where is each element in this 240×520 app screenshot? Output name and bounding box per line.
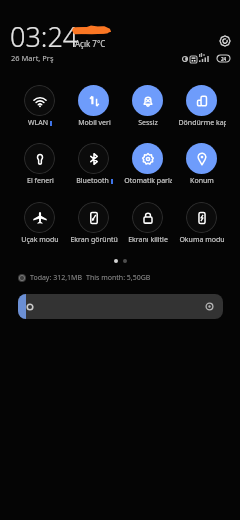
staticText: Ekranı kilitle bbox=[128, 235, 168, 245]
staticText: Today: 312,1MB bbox=[30, 273, 82, 283]
button[interactable] bbox=[67, 80, 121, 126]
button[interactable] bbox=[13, 139, 67, 185]
staticText: El feneri bbox=[27, 176, 54, 186]
staticText: 03:24 bbox=[10, 18, 79, 55]
staticText: Sessiz bbox=[138, 118, 158, 128]
staticText: Döndürme kapalı bbox=[178, 118, 226, 128]
staticText: Okuma modu bbox=[179, 235, 225, 245]
staticText: 26 Mart, Prş bbox=[11, 53, 54, 63]
staticText: Ekran görüntüsü bbox=[70, 235, 118, 245]
staticText: This month: 5,50GB bbox=[86, 273, 151, 283]
staticText: Uçak modu bbox=[21, 235, 59, 245]
button[interactable]: Settings bbox=[219, 35, 231, 47]
staticText: Otomatik parlaklık bbox=[124, 176, 172, 186]
button[interactable] bbox=[175, 198, 229, 244]
button[interactable] bbox=[13, 80, 67, 126]
button[interactable]: Brightness bbox=[18, 294, 223, 319]
button[interactable] bbox=[67, 198, 121, 244]
button[interactable] bbox=[175, 139, 229, 185]
button[interactable] bbox=[13, 198, 67, 244]
button[interactable] bbox=[121, 80, 175, 126]
button[interactable] bbox=[121, 139, 175, 185]
staticText: Bluetooth bbox=[76, 176, 109, 186]
button[interactable] bbox=[121, 198, 175, 244]
button[interactable] bbox=[175, 80, 229, 126]
staticText: Konum bbox=[190, 176, 214, 186]
staticText: 24 bbox=[221, 56, 227, 62]
button[interactable] bbox=[67, 139, 121, 185]
staticText: Açık 7°C bbox=[75, 38, 106, 49]
staticText: Mobil veri bbox=[78, 118, 111, 128]
staticText: WLAN bbox=[28, 118, 48, 128]
